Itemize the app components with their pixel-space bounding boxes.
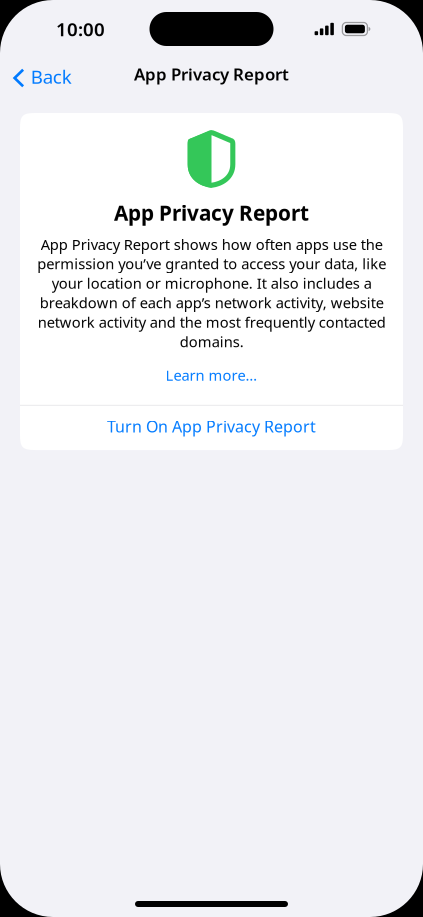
staticText: App Privacy Report shows how often apps …	[37, 234, 386, 351]
staticText: Learn more…	[165, 365, 257, 385]
button[interactable]: Turn On App Privacy Report	[20, 406, 403, 450]
staticText: App Privacy Report	[114, 199, 309, 226]
button[interactable]: Back	[0, 58, 82, 98]
staticText: Back	[31, 64, 72, 89]
staticText: App Privacy Report	[134, 63, 289, 85]
button[interactable]: Learn more…	[20, 351, 403, 405]
staticText: Turn On App Privacy Report	[107, 416, 316, 437]
staticText: 10:00	[56, 17, 105, 41]
